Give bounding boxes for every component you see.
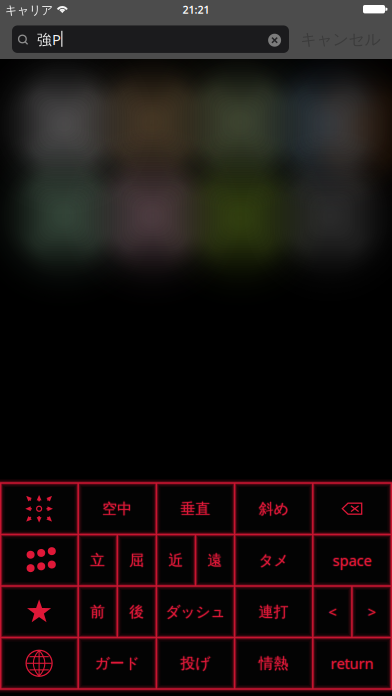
- staticText: 連打: [259, 602, 289, 620]
- staticText: 情熱: [259, 653, 289, 671]
- staticText: 空中: [101, 500, 131, 518]
- staticText: >: [367, 602, 375, 621]
- staticText: 屈: [129, 550, 144, 568]
- staticText: return: [330, 653, 373, 673]
- staticText: space: [332, 550, 371, 569]
- staticText: 屈: [129, 552, 144, 570]
- staticText: 前: [91, 603, 106, 621]
- button[interactable]: キャンセル: [292, 24, 388, 54]
- staticText: タメ: [259, 550, 289, 568]
- staticText: 前: [90, 604, 105, 622]
- staticText: 連打: [260, 603, 290, 621]
- staticText: ダッシュ: [165, 603, 225, 621]
- staticText: 斜め: [259, 499, 289, 517]
- button[interactable]: 立: [78, 534, 117, 586]
- staticText: 情熱: [259, 654, 289, 672]
- staticText: 垂直: [180, 499, 210, 517]
- staticText: ダッシュ: [166, 603, 226, 621]
- staticText: 空中: [102, 500, 132, 518]
- button[interactable]: 空中: [78, 483, 156, 534]
- button[interactable]: 垂直: [156, 483, 235, 534]
- staticText: 前: [90, 603, 105, 621]
- staticText: 連打: [259, 603, 289, 621]
- staticText: 後: [129, 604, 144, 622]
- button[interactable]: タメ: [235, 534, 313, 586]
- staticText: return: [331, 653, 374, 673]
- staticText: 後: [129, 603, 144, 621]
- button[interactable]: 近: [156, 534, 195, 586]
- staticText: 斜め: [259, 501, 289, 519]
- staticText: >: [367, 601, 375, 621]
- button[interactable]: space: [313, 534, 391, 586]
- button[interactable]: 遠: [195, 534, 235, 586]
- staticText: <: [328, 601, 336, 621]
- staticText: 垂直: [180, 500, 210, 518]
- staticText: 後: [128, 603, 143, 621]
- staticText: ガード: [95, 655, 140, 673]
- staticText: 投げ: [180, 655, 210, 673]
- staticText: 投げ: [180, 654, 210, 672]
- staticText: 近: [169, 551, 184, 569]
- button[interactable]: 連打: [235, 586, 313, 637]
- staticText: ガード: [94, 654, 139, 672]
- staticText: 垂直: [180, 501, 210, 519]
- staticText: >: [367, 602, 375, 621]
- button[interactable]: 後: [117, 586, 156, 637]
- staticText: 近: [168, 550, 183, 568]
- staticText: 連打: [259, 604, 289, 622]
- staticText: 近: [168, 551, 183, 569]
- staticText: 斜め: [259, 500, 289, 518]
- staticText: <: [329, 602, 337, 621]
- button[interactable]: Next keyboard: [26, 650, 52, 676]
- button[interactable]: 斜め: [235, 483, 313, 534]
- staticText: 近: [168, 552, 183, 570]
- staticText: 屈: [130, 551, 145, 569]
- staticText: <: [328, 602, 336, 621]
- button[interactable]: 屈: [117, 534, 156, 586]
- staticText: 立: [91, 551, 106, 569]
- button[interactable]: Special: [26, 598, 52, 625]
- button[interactable]: ガード: [78, 637, 156, 689]
- staticText: return: [330, 654, 373, 674]
- staticText: ダッシュ: [165, 603, 225, 621]
- staticText: 立: [90, 551, 105, 569]
- staticText: 連打: [258, 603, 288, 621]
- staticText: 近: [168, 551, 183, 569]
- staticText: return: [329, 653, 372, 673]
- button[interactable]: return: [313, 637, 391, 689]
- staticText: 前: [90, 602, 105, 620]
- button[interactable]: <: [313, 586, 352, 637]
- staticText: 屈: [128, 551, 143, 569]
- button[interactable]: >: [352, 586, 391, 637]
- staticText: 垂直: [181, 500, 211, 518]
- staticText: 垂直: [180, 500, 210, 518]
- button[interactable]: 投げ: [156, 637, 235, 689]
- button[interactable]: Clear text: [268, 34, 281, 47]
- button[interactable]: Delete: [341, 502, 362, 515]
- button[interactable]: Buttons: [25, 548, 53, 572]
- staticText: ガード: [95, 654, 140, 672]
- staticText: 投げ: [180, 654, 210, 672]
- button[interactable]: 前: [78, 586, 117, 637]
- staticText: 空中: [102, 499, 132, 517]
- staticText: space: [332, 551, 371, 571]
- staticText: 後: [129, 602, 144, 620]
- staticText: タメ: [259, 551, 289, 569]
- staticText: 立: [90, 550, 105, 568]
- staticText: ガード: [96, 654, 141, 672]
- staticText: 空中: [103, 500, 133, 518]
- staticText: 立: [90, 552, 105, 570]
- staticText: <: [327, 602, 335, 621]
- staticText: 遠: [208, 551, 223, 569]
- staticText: ダッシュ: [165, 604, 225, 622]
- staticText: space: [331, 550, 370, 570]
- button[interactable]: ダッシュ: [156, 586, 235, 637]
- staticText: タメ: [259, 552, 289, 570]
- staticText: 遠: [208, 551, 223, 569]
- staticText: 情熱: [260, 654, 290, 672]
- button[interactable]: 情熱: [235, 637, 313, 689]
- button[interactable]: Directions: [23, 493, 55, 525]
- staticText: 立: [89, 551, 104, 569]
- staticText: タメ: [260, 551, 290, 569]
- staticText: 斜め: [260, 500, 290, 518]
